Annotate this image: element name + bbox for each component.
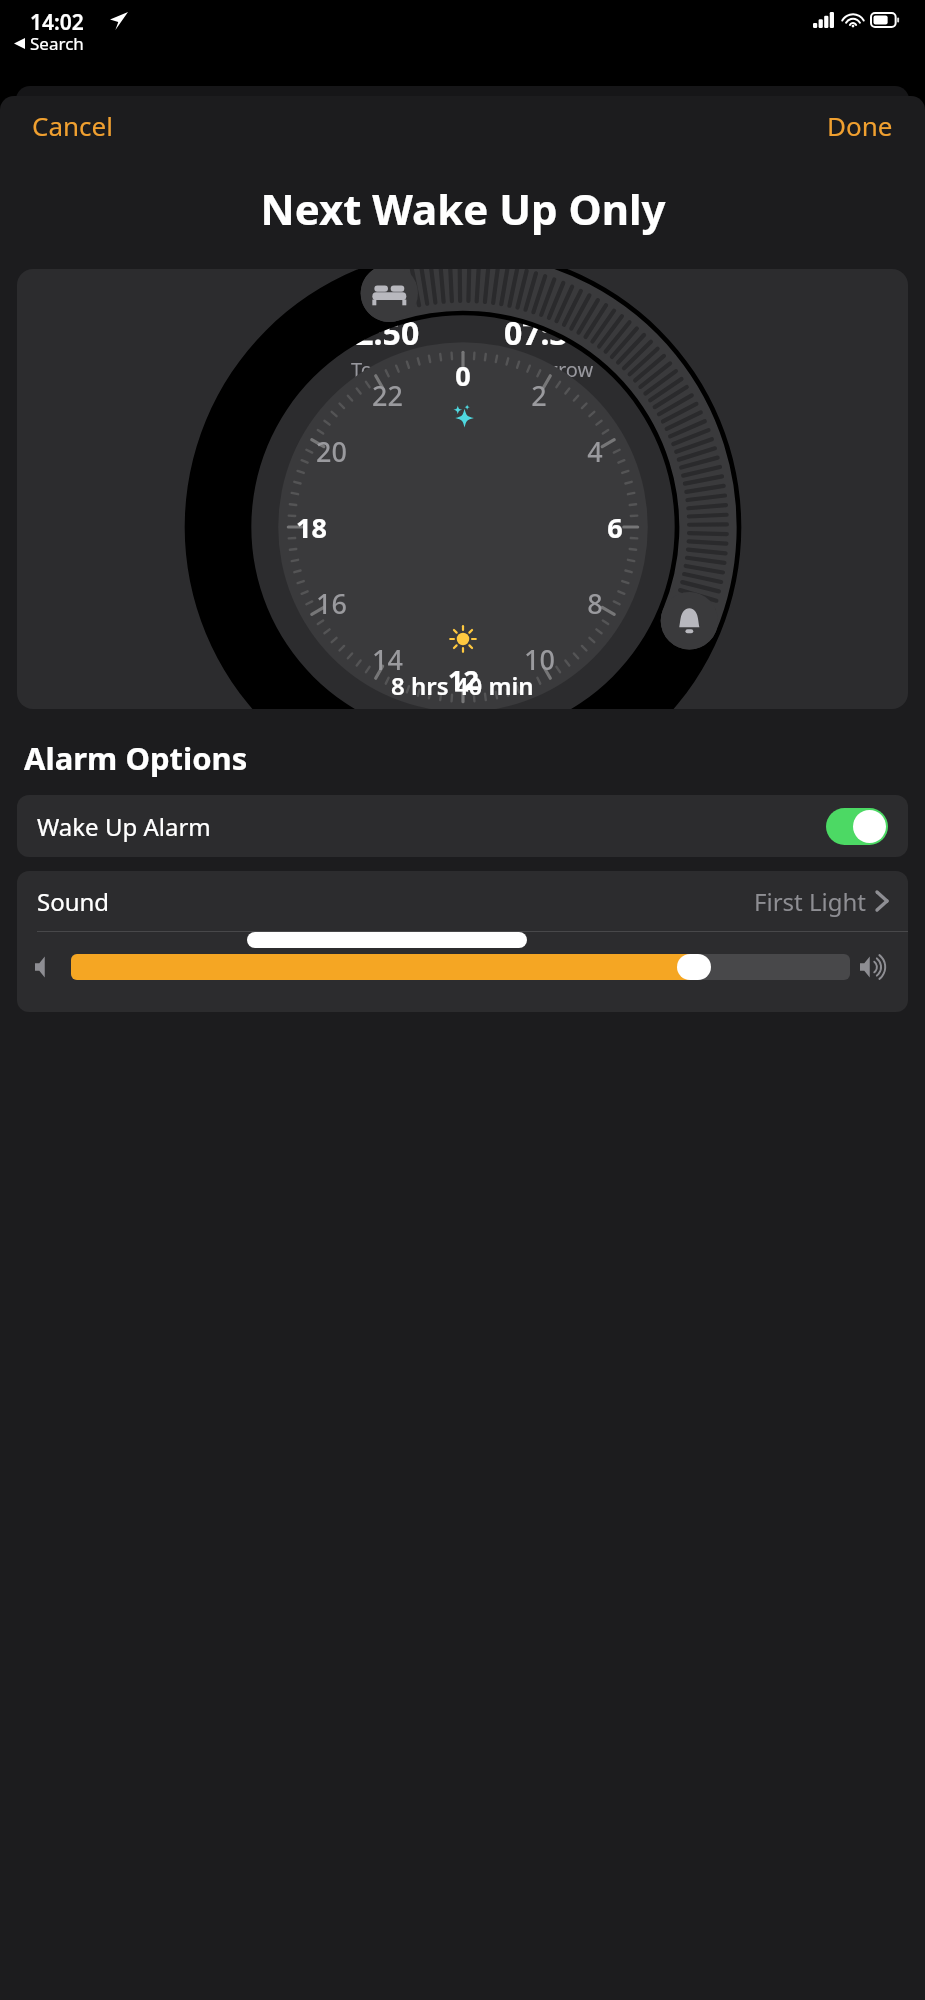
- staticText: 20: [316, 433, 347, 470]
- button[interactable]: Done: [817, 102, 903, 149]
- other: Sleep schedule dial: [183, 391, 743, 663]
- staticText: BEDTIME: [350, 283, 432, 309]
- staticText: Tomorrow: [497, 356, 594, 383]
- staticText: 12: [448, 661, 479, 698]
- staticText: 2: [531, 377, 547, 414]
- button[interactable]: Wake Up Alarm: [17, 795, 908, 857]
- staticText: Cancel: [32, 108, 113, 143]
- staticText: Alarm Options: [24, 737, 248, 779]
- staticText: 22:50: [337, 311, 420, 355]
- button[interactable]: Sound: [17, 871, 908, 931]
- staticText: 07:30: [504, 311, 587, 355]
- staticText: 18: [296, 509, 327, 546]
- staticText: Next Wake Up Only: [260, 180, 666, 237]
- staticText: Today: [351, 356, 407, 383]
- button[interactable]: BEDTIME: [17, 269, 908, 709]
- staticText: 10: [524, 641, 555, 678]
- staticText: 8: [587, 585, 603, 622]
- staticText: Search: [30, 32, 84, 55]
- staticText: 14: [372, 641, 403, 678]
- staticText: 16: [316, 585, 347, 622]
- staticText: 0: [455, 357, 471, 394]
- staticText: This schedule meets your sleep goal.: [281, 708, 644, 709]
- staticText: 8 hrs 40 min: [391, 669, 534, 702]
- staticText: Wake Up Alarm: [37, 810, 211, 843]
- staticText: 6: [607, 509, 623, 546]
- staticText: Sound: [37, 885, 110, 918]
- staticText: 4: [587, 433, 603, 470]
- staticText: Done: [827, 108, 893, 143]
- staticText: 22: [372, 377, 403, 414]
- staticText: WAKE UP: [517, 283, 599, 309]
- staticText: First Light: [754, 885, 866, 918]
- staticText: 14:02: [30, 8, 84, 37]
- button[interactable]: Alarm volume: [71, 954, 850, 980]
- button[interactable]: Cancel: [22, 102, 123, 149]
